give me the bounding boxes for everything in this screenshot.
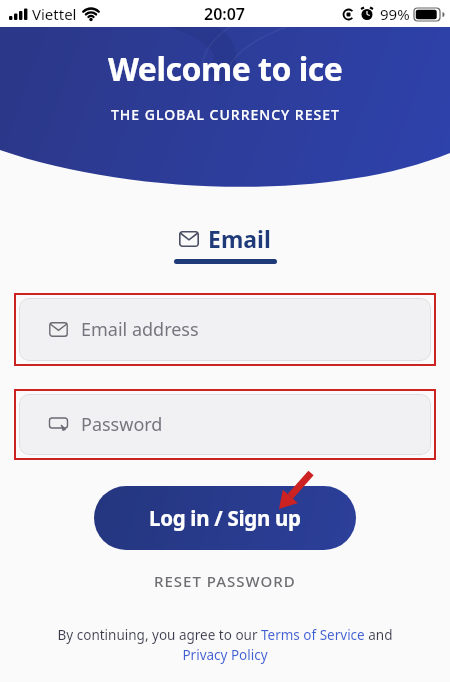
staticText: Welcome to ice	[108, 47, 343, 91]
staticText: 20:07	[204, 3, 246, 25]
staticText: THE GLOBAL CURRENCY RESET	[111, 105, 340, 124]
button[interactable]: By continuing, you agree to our Terms of…	[0, 626, 450, 664]
button[interactable]: RESET PASSWORD	[154, 571, 296, 591]
staticText: Email	[208, 223, 271, 254]
staticText: Email address	[81, 317, 199, 342]
staticText: RESET PASSWORD	[154, 571, 296, 591]
staticText: Viettel	[32, 4, 77, 24]
button[interactable]: Email address	[19, 298, 431, 361]
button[interactable]: Email	[179, 223, 271, 254]
staticText: Log in / Sign up	[149, 504, 301, 532]
button[interactable]: Log in / Sign up	[94, 486, 356, 550]
staticText: Password	[81, 412, 163, 437]
button[interactable]: Password	[19, 394, 431, 455]
staticText: 99%	[380, 4, 410, 24]
